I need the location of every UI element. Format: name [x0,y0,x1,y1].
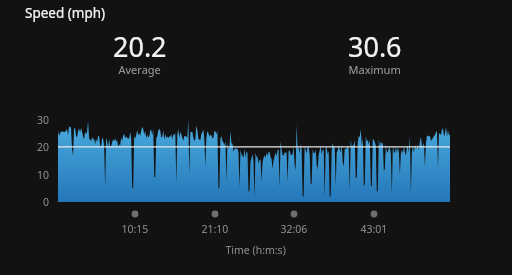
button[interactable]: Speed chart [0,0,512,275]
